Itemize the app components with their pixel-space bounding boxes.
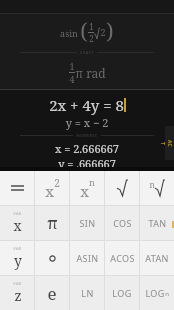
button[interactable]: LN xyxy=(70,276,104,310)
button[interactable]: Degrees xyxy=(35,241,69,275)
staticText: ATAN xyxy=(145,252,169,264)
button[interactable]: x squared xyxy=(35,171,69,205)
button[interactable]: SIN xyxy=(70,206,104,240)
staticText: asin xyxy=(60,27,78,39)
staticText: x xyxy=(80,181,89,201)
staticText: n xyxy=(89,176,95,188)
staticText: ASIN xyxy=(76,252,99,264)
button[interactable]: VAR xyxy=(0,241,34,275)
staticText: y = .666667 xyxy=(0,156,174,167)
staticText: n xyxy=(149,179,155,190)
staticText: n xyxy=(165,290,169,298)
staticText: LOG xyxy=(112,287,132,299)
staticText: ( xyxy=(80,17,88,46)
staticText: y xyxy=(14,251,22,270)
button[interactable]: asin xyxy=(0,14,174,50)
button[interactable]: ATAN xyxy=(140,241,174,275)
button[interactable]: Square root xyxy=(105,171,139,205)
button[interactable]: Exact result xyxy=(165,126,174,160)
button[interactable]: VAR xyxy=(0,206,34,240)
staticText: π rad xyxy=(75,65,106,81)
staticText: VAR xyxy=(13,246,22,251)
staticText: COS xyxy=(113,217,132,229)
button[interactable]: LOG xyxy=(105,276,139,310)
staticText: y = x − 2 xyxy=(0,115,174,130)
button[interactable]: Pi xyxy=(35,206,69,240)
button[interactable]: ASIN xyxy=(70,241,104,275)
button[interactable]: Euler's number xyxy=(35,276,69,310)
staticText: LN xyxy=(81,287,94,299)
staticText: 2 xyxy=(89,33,94,44)
button[interactable]: TAN xyxy=(140,206,174,240)
staticText: x xyxy=(45,181,54,201)
staticText: SIN xyxy=(79,217,96,229)
staticText: TAN xyxy=(148,217,167,229)
staticText: 2 xyxy=(54,176,60,190)
staticText: 2x + 4y = 8 xyxy=(49,95,124,115)
staticText: ACOS xyxy=(110,252,135,264)
button[interactable]: x to the n xyxy=(70,171,104,205)
staticText: EXACT xyxy=(159,139,174,148)
staticText: VAR xyxy=(13,211,22,216)
staticText: x = 2.666667 xyxy=(0,141,174,156)
staticText: EXACT xyxy=(80,50,94,55)
staticText: VAR xyxy=(13,281,22,286)
button[interactable]: COS xyxy=(105,206,139,240)
staticText: z xyxy=(14,286,22,305)
button[interactable]: Equals xyxy=(0,171,34,205)
staticText: e xyxy=(47,282,57,305)
button[interactable]: LOG xyxy=(140,276,174,310)
staticText: LOG xyxy=(145,287,165,299)
button[interactable]: 1 xyxy=(0,55,174,89)
staticText: 1 xyxy=(69,60,75,72)
staticText: ) xyxy=(106,17,114,46)
button[interactable]: ACOS xyxy=(105,241,139,275)
staticText: NUMERIC xyxy=(76,133,98,138)
staticText: 1 xyxy=(89,21,94,32)
staticText: 2 xyxy=(100,26,106,38)
staticText: x xyxy=(13,216,22,235)
button[interactable]: VAR xyxy=(0,276,34,310)
staticText: π xyxy=(47,212,58,234)
button[interactable]: nth root xyxy=(140,171,174,205)
staticText: 4 xyxy=(69,73,75,85)
